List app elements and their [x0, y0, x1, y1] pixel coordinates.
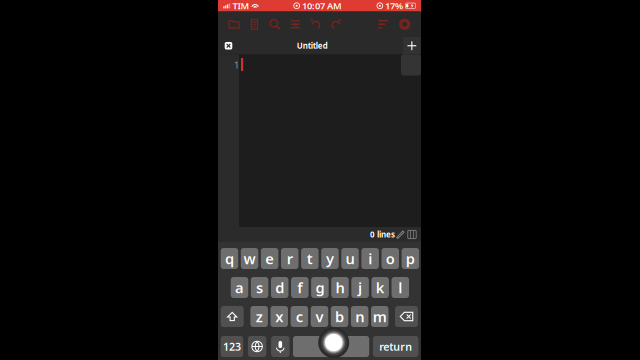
button[interactable]: Files [224, 11, 244, 37]
staticText: Untitled [297, 40, 328, 51]
staticText: d [275, 278, 284, 297]
button[interactable]: Undo [305, 11, 326, 37]
staticText: c [296, 307, 303, 326]
button[interactable]: l [391, 277, 409, 298]
staticText: h [335, 278, 344, 297]
button[interactable]: e [261, 248, 278, 269]
button[interactable]: Next keyboard [248, 336, 266, 357]
button[interactable]: Search [265, 11, 285, 37]
button[interactable]: z [250, 306, 268, 327]
button[interactable]: j [351, 277, 369, 298]
button[interactable]: r [281, 248, 298, 269]
staticText: 1 [234, 59, 239, 71]
button[interactable]: Shift [221, 306, 244, 327]
staticText: j [358, 278, 362, 297]
staticText: i [368, 249, 372, 268]
button[interactable]: return [373, 336, 418, 357]
staticText: l [398, 278, 402, 297]
button[interactable]: p [402, 248, 419, 269]
button[interactable]: g [311, 277, 329, 298]
button[interactable]: o [381, 248, 399, 269]
button[interactable]: New document [403, 37, 420, 54]
staticText: 17% [385, 0, 403, 12]
button[interactable]: c [291, 306, 308, 327]
staticText: r [287, 249, 293, 268]
button[interactable]: Delete [395, 306, 418, 327]
staticText: x [275, 307, 283, 326]
button[interactable]: v [311, 306, 328, 327]
staticText: s [256, 278, 263, 297]
button[interactable]: f [291, 277, 309, 298]
staticText: 123 [223, 339, 241, 354]
staticText: 0 lines [370, 229, 395, 240]
staticText: TIM [232, 0, 249, 12]
button[interactable]: b [331, 306, 348, 327]
button[interactable]: Settings [394, 11, 415, 37]
button[interactable]: Documents [244, 11, 265, 37]
button[interactable]: Sort [374, 11, 394, 37]
staticText: return [379, 339, 412, 354]
staticText: e [265, 249, 274, 268]
staticText: u [345, 249, 354, 268]
button[interactable]: m [371, 306, 388, 327]
staticText: m [373, 307, 387, 326]
button[interactable]: n [351, 306, 368, 327]
staticText: n [355, 307, 364, 326]
button[interactable]: h [331, 277, 349, 298]
staticText: a [235, 278, 244, 297]
button[interactable]: q [221, 248, 238, 269]
staticText: p [406, 249, 415, 268]
staticText: k [376, 278, 385, 297]
button[interactable]: s [251, 277, 268, 298]
button[interactable]: k [371, 277, 389, 298]
button[interactable]: t [301, 248, 319, 269]
button[interactable]: u [341, 248, 359, 269]
button[interactable]: Indent [285, 11, 305, 37]
button[interactable]: Dictate [271, 336, 289, 357]
button[interactable]: x [270, 306, 288, 327]
staticText: b [335, 307, 344, 326]
staticText: g [315, 278, 324, 297]
button[interactable]: w [241, 248, 258, 269]
button[interactable]: y [321, 248, 339, 269]
button[interactable]: 123 [221, 336, 243, 357]
staticText: y [326, 249, 334, 268]
staticText: q [225, 249, 234, 268]
staticText: 10:07 AM [302, 0, 342, 12]
button[interactable]: a [231, 277, 248, 298]
staticText: t [307, 249, 313, 268]
button[interactable]: Redo [326, 11, 346, 37]
staticText: v [315, 307, 323, 326]
button[interactable]: Layout [406, 227, 417, 242]
staticText: w [243, 249, 255, 268]
button[interactable]: i [361, 248, 379, 269]
button[interactable]: d [271, 277, 288, 298]
button[interactable]: Untitled [218, 37, 388, 54]
button[interactable]: Space [293, 336, 369, 357]
button[interactable]: Edit [395, 227, 406, 242]
staticText: o [386, 249, 395, 268]
staticText: f [297, 278, 302, 297]
staticText: z [256, 307, 263, 326]
